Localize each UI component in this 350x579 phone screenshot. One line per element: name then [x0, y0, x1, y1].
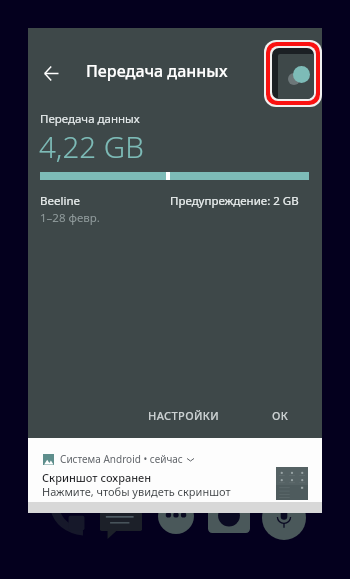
staticText: 1–28 февр.	[40, 210, 100, 226]
button[interactable]: Account	[272, 48, 314, 99]
button[interactable]: НАСТРОЙКИ	[136, 399, 232, 432]
staticText: Предупреждение: 2 GB	[170, 193, 299, 209]
button[interactable]: Assistant	[262, 496, 306, 540]
staticText: Система Android • сейчас	[60, 452, 183, 466]
button[interactable]: Camera	[208, 498, 250, 533]
button[interactable]: Phone	[48, 508, 86, 538]
staticText: НАСТРОЙКИ	[148, 408, 220, 423]
button[interactable]: Back	[33, 55, 69, 91]
staticText: Скриншот сохранен	[42, 470, 152, 485]
button[interactable]: Messages	[100, 512, 142, 539]
staticText: Передача данных	[40, 111, 140, 127]
button[interactable]: ОК	[260, 399, 301, 432]
staticText: 4,22 GB	[39, 126, 144, 166]
button[interactable]: All apps	[158, 498, 194, 534]
staticText: Передача данных	[86, 60, 228, 82]
staticText: Нажмите, чтобы увидеть скриншот	[42, 484, 231, 499]
staticText: ОК	[272, 408, 289, 423]
staticText: Beeline	[40, 193, 80, 209]
button[interactable]: Система Android • сейчас	[28, 438, 322, 502]
